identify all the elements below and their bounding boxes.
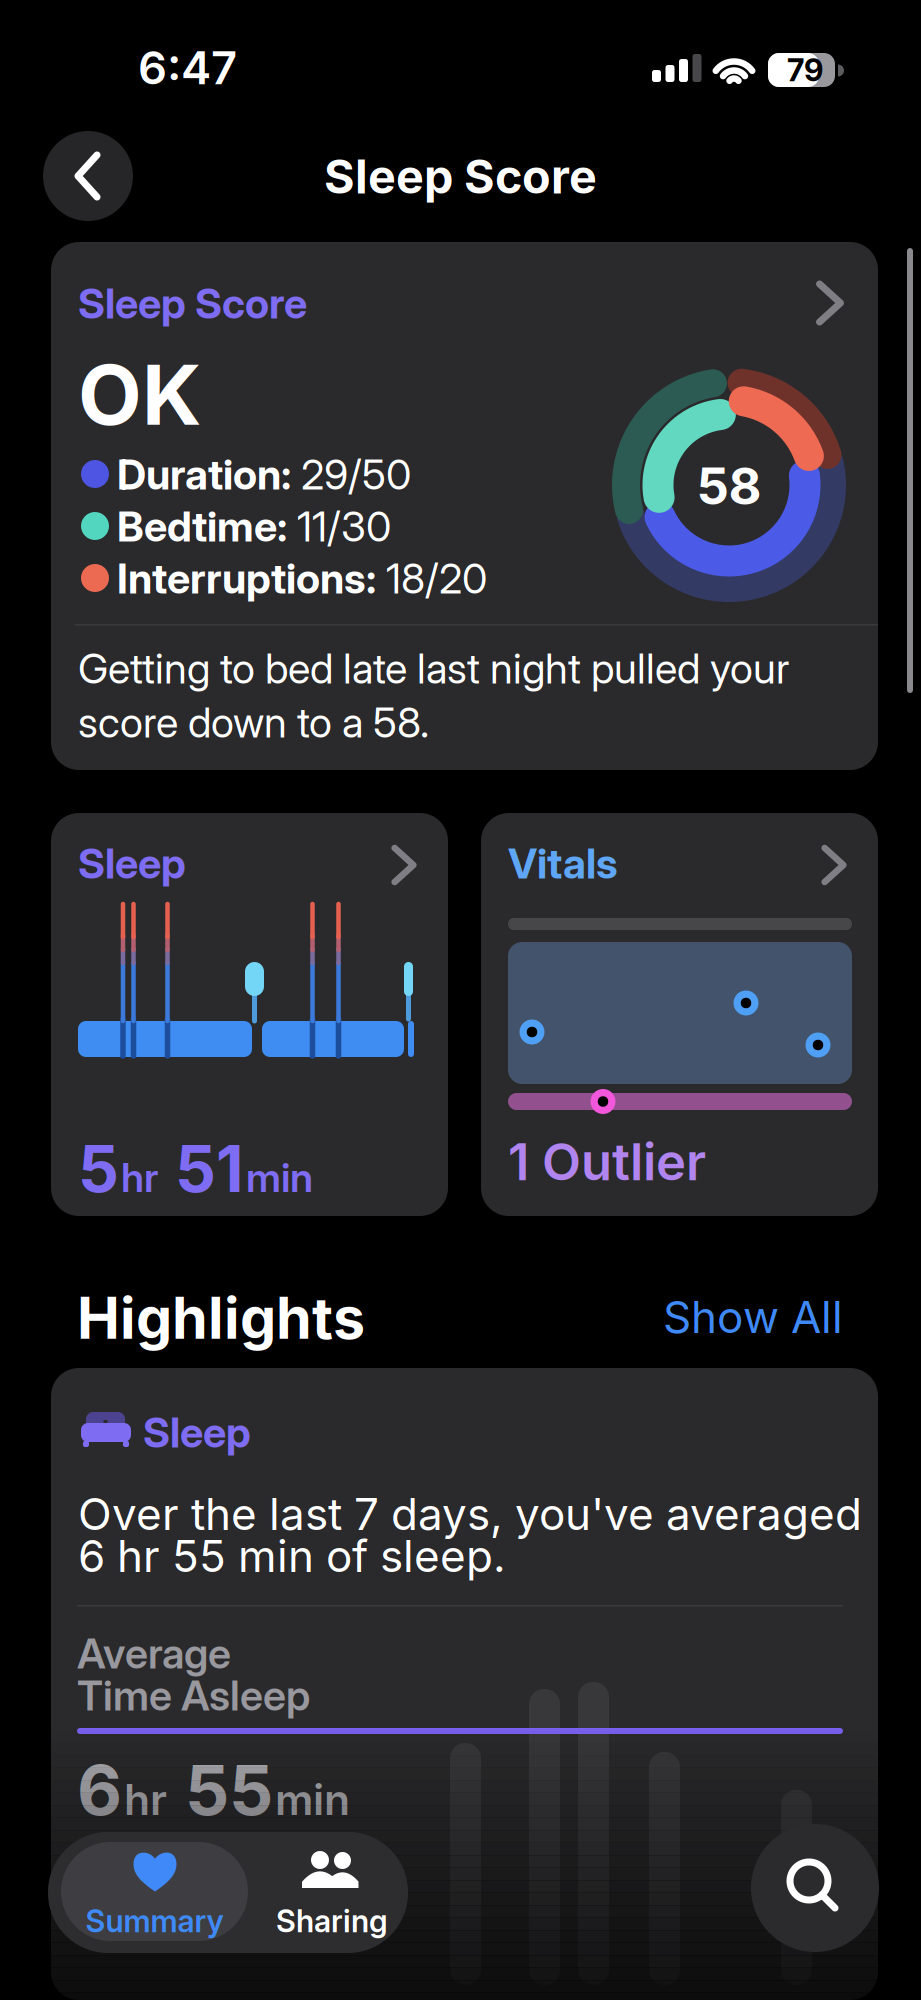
button[interactable]: Vitals [481, 813, 878, 1216]
staticText: hr [121, 1154, 158, 1201]
staticText: Show All [663, 1291, 843, 1343]
staticText: 55 [169, 1749, 273, 1831]
staticText: score down to a 58. [78, 698, 429, 747]
button[interactable]: Show All [663, 1291, 843, 1343]
staticText: 6 [77, 1749, 122, 1831]
staticText: 79 [787, 52, 823, 88]
staticText: 58 [696, 456, 761, 516]
staticText: min [246, 1154, 313, 1201]
staticText: 29/50 [291, 450, 411, 499]
staticText: Vitals [508, 839, 618, 888]
staticText: 11/30 [287, 502, 391, 551]
staticText: OK [78, 346, 201, 443]
staticText: Sleep Score [324, 149, 597, 204]
staticText: Sleep [143, 1408, 251, 1457]
staticText: 18/20 [376, 554, 487, 603]
staticText: Summary [85, 1903, 223, 1939]
staticText: 6 hr 55 min of sleep. [78, 1530, 506, 1582]
staticText: Interruptions: [117, 554, 376, 603]
button[interactable]: Sharing [248, 1842, 416, 1941]
staticText: 51 [160, 1131, 244, 1206]
button[interactable]: Sleep Score [51, 242, 878, 770]
staticText: Sleep [78, 839, 186, 888]
staticText: hr [124, 1774, 167, 1825]
staticText: Highlights [77, 1284, 365, 1352]
button[interactable]: Sleep [51, 1368, 878, 2000]
button[interactable]: Summary [61, 1842, 248, 1941]
button[interactable]: Sleep [51, 813, 448, 1216]
staticText: Sharing [276, 1903, 388, 1939]
staticText: Average [77, 1629, 231, 1678]
staticText: Sleep Score [78, 279, 307, 328]
staticText: 1 Outlier [508, 1132, 706, 1192]
staticText: Duration: [117, 450, 291, 499]
staticText: min [275, 1774, 350, 1825]
button[interactable] [43, 131, 133, 221]
staticText: 5 [78, 1131, 119, 1206]
staticText: 6:47 [138, 41, 237, 94]
staticText: Getting to bed late last night pulled yo… [78, 644, 789, 693]
staticText: Bedtime: [117, 502, 287, 551]
staticText: Over the last 7 days, you've averaged [78, 1488, 862, 1540]
button[interactable] [751, 1824, 879, 1952]
staticText: Time Asleep [77, 1671, 310, 1720]
